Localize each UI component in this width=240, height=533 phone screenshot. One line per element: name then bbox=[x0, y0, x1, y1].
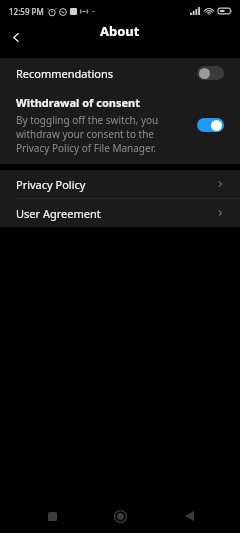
staticText: About bbox=[100, 22, 140, 40]
staticText: Recommendations bbox=[16, 66, 197, 81]
staticText: By toggling off the switch, you withdraw… bbox=[16, 113, 187, 155]
button[interactable]: Privacy Policy bbox=[0, 170, 240, 198]
staticText: Withdrawal of consent bbox=[16, 95, 140, 110]
button[interactable]: Home bbox=[103, 499, 137, 533]
button[interactable]: Withdrawal of consent bbox=[0, 88, 240, 164]
button[interactable]: Toggle off bbox=[197, 66, 224, 80]
staticText: 12:59 PM bbox=[9, 6, 44, 17]
button[interactable]: Back bbox=[0, 22, 32, 53]
button[interactable]: Toggle on bbox=[197, 118, 224, 132]
button[interactable]: Back bbox=[172, 499, 206, 533]
button[interactable]: Recommendations bbox=[0, 58, 240, 88]
button[interactable]: User Agreement bbox=[0, 199, 240, 227]
staticText: User Agreement bbox=[16, 206, 216, 221]
staticText: Privacy Policy bbox=[16, 177, 216, 192]
button[interactable]: Recent apps bbox=[35, 499, 69, 533]
